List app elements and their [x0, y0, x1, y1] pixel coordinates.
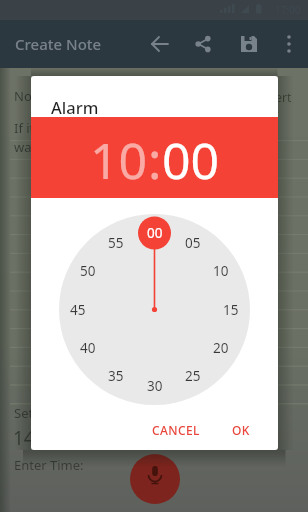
- staticText: 10: [90, 126, 148, 194]
- button[interactable]: 50: [74, 261, 102, 281]
- button[interactable]: 40: [74, 338, 102, 358]
- staticText: 14:35: [13, 425, 62, 451]
- button[interactable]: OK: [220, 414, 262, 446]
- button[interactable]: [228, 20, 272, 68]
- button[interactable]: 00: [141, 223, 169, 243]
- staticText: 20: [213, 339, 229, 357]
- button[interactable]: CANCEL: [140, 414, 212, 446]
- staticText: OK: [232, 422, 250, 438]
- staticText: 50: [80, 262, 96, 280]
- staticText: 40: [80, 339, 96, 357]
- button[interactable]: 10: [207, 261, 235, 281]
- staticText: Insert: [258, 89, 292, 105]
- staticText: CANCEL: [152, 422, 200, 438]
- staticText: :: [148, 126, 162, 194]
- staticText: 25: [185, 367, 201, 385]
- button[interactable]: 45: [64, 300, 92, 320]
- button[interactable]: [140, 20, 184, 68]
- button[interactable]: 25: [179, 366, 207, 386]
- staticText: If it is something you really want to re…: [14, 119, 179, 156]
- button[interactable]: [130, 454, 180, 504]
- button[interactable]: [184, 20, 228, 68]
- button[interactable]: 20: [207, 338, 235, 358]
- button[interactable]: 15: [217, 300, 245, 320]
- staticText: Note: [14, 87, 44, 105]
- staticText: 45: [70, 301, 86, 319]
- staticText: 05: [185, 234, 201, 252]
- staticText: Enter Time:: [14, 456, 84, 474]
- staticText: Alarm: [51, 96, 99, 118]
- button[interactable]: [272, 20, 308, 68]
- button[interactable]: 05: [179, 233, 207, 253]
- staticText: 35: [108, 367, 124, 385]
- staticText: 55: [108, 234, 124, 252]
- button[interactable]: 55: [102, 233, 130, 253]
- staticText: 15: [223, 301, 239, 319]
- staticText: Set Alarm: [14, 404, 74, 422]
- button[interactable]: 35: [102, 366, 130, 386]
- staticText: 10: [213, 262, 229, 280]
- staticText: 00: [162, 126, 220, 194]
- staticText: 00: [147, 224, 163, 242]
- staticText: 30: [147, 377, 163, 395]
- button[interactable]: 30: [141, 376, 169, 396]
- staticText: Create Note: [15, 34, 102, 54]
